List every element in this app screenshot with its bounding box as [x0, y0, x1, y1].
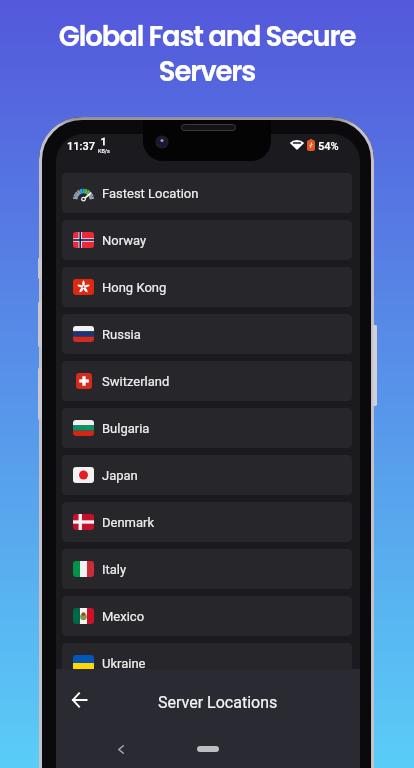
button[interactable]: Fastest Location: [62, 173, 352, 213]
staticText: 54%: [318, 140, 339, 153]
button[interactable]: Bulgaria: [62, 408, 352, 448]
staticText: 11:37: [67, 140, 95, 153]
staticText: Japan: [102, 468, 138, 483]
staticText: Server Locations: [158, 693, 278, 712]
staticText: 1: [101, 137, 107, 148]
staticText: Denmark: [102, 515, 155, 530]
button[interactable]: Mexico: [62, 596, 352, 636]
staticText: Fastest Location: [102, 186, 199, 201]
staticText: Norway: [102, 233, 147, 248]
staticText: Ukraine: [102, 656, 146, 671]
staticText: Mexico: [102, 609, 145, 624]
staticText: Bulgaria: [102, 421, 150, 436]
staticText: Italy: [102, 562, 127, 577]
button[interactable]: Hong Kong: [62, 267, 352, 307]
button[interactable]: Japan: [62, 455, 352, 495]
staticText: Switzerland: [102, 374, 170, 389]
button[interactable]: Switzerland: [62, 361, 352, 401]
button[interactable]: Denmark: [62, 502, 352, 542]
staticText: Global Fast and Secure Servers: [0, 17, 414, 91]
button[interactable]: Norway: [62, 220, 352, 260]
staticText: Hong Kong: [102, 280, 167, 295]
button[interactable]: Italy: [62, 549, 352, 589]
button[interactable]: Russia: [62, 314, 352, 354]
staticText: KB/s: [98, 148, 110, 154]
button[interactable]: Back: [59, 680, 99, 720]
button[interactable]: Home: [197, 746, 219, 752]
button[interactable]: Ukraine: [62, 643, 352, 683]
staticText: Russia: [102, 327, 141, 342]
